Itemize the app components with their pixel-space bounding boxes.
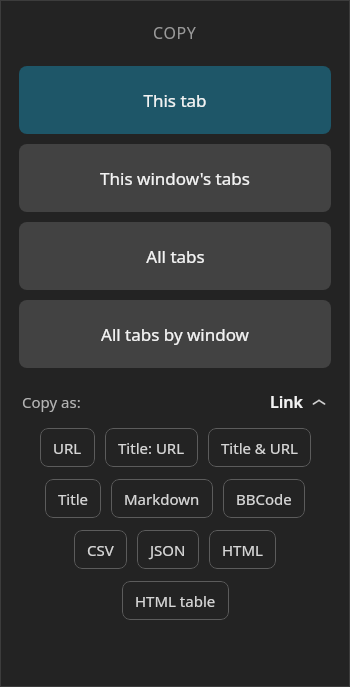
- staticText: Title: URL: [118, 438, 185, 458]
- button[interactable]: Markdown: [111, 479, 213, 518]
- other: Collapse format list: [312, 395, 326, 409]
- staticText: This window's tabs: [100, 167, 250, 190]
- staticText: All tabs by window: [101, 323, 249, 346]
- staticText: HTML table: [135, 591, 216, 611]
- button[interactable]: HTML: [209, 530, 276, 569]
- staticText: CSV: [87, 540, 114, 560]
- button[interactable]: This tab: [19, 66, 331, 134]
- staticText: Link: [270, 391, 303, 413]
- staticText: Title: [58, 489, 88, 509]
- staticText: URL: [53, 438, 82, 458]
- button[interactable]: Title: [45, 479, 101, 518]
- button[interactable]: Link: [268, 389, 328, 415]
- button[interactable]: All tabs: [19, 222, 331, 290]
- button[interactable]: CSV: [74, 530, 127, 569]
- button[interactable]: Title & URL: [208, 428, 311, 467]
- button[interactable]: URL: [40, 428, 95, 467]
- button[interactable]: JSON: [137, 530, 199, 569]
- button[interactable]: Title: URL: [105, 428, 198, 467]
- button[interactable]: All tabs by window: [19, 300, 331, 368]
- staticText: JSON: [150, 540, 186, 560]
- staticText: Copy as:: [22, 392, 81, 412]
- staticText: Markdown: [124, 489, 200, 509]
- staticText: COPY: [153, 22, 197, 44]
- button[interactable]: HTML table: [122, 581, 229, 620]
- staticText: This tab: [143, 89, 207, 112]
- staticText: All tabs: [146, 245, 205, 268]
- staticText: BBCode: [236, 489, 292, 509]
- staticText: HTML: [222, 540, 263, 560]
- button[interactable]: BBCode: [223, 479, 305, 518]
- staticText: Title & URL: [221, 438, 298, 458]
- button[interactable]: This window's tabs: [19, 144, 331, 212]
